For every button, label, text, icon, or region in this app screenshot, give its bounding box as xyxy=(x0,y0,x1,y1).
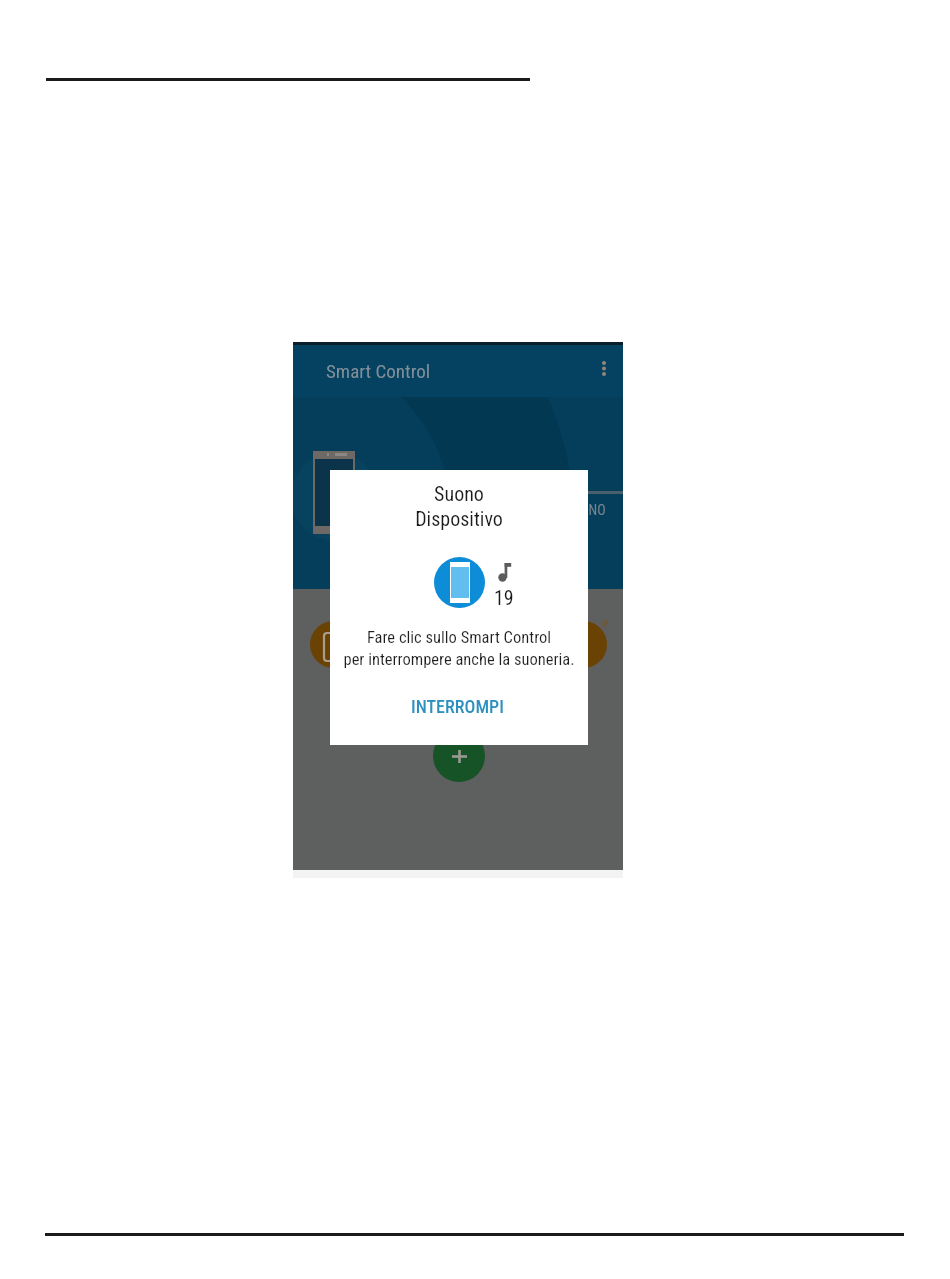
staticText: Fare clic sullo Smart Control per interr… xyxy=(330,628,588,669)
staticText: SUONO xyxy=(565,502,606,518)
button[interactable]: Device xyxy=(310,621,357,668)
button[interactable]: INTERROMPI xyxy=(405,692,510,721)
button[interactable]: Sound xyxy=(560,621,607,668)
button[interactable]: More options xyxy=(593,357,615,379)
staticText: Suono Dispositivo xyxy=(330,482,588,531)
staticText: INTERROMPI xyxy=(411,696,504,717)
staticText: 19 xyxy=(494,586,514,609)
staticText: Smart Control xyxy=(326,360,431,382)
button[interactable]: Add xyxy=(433,730,485,782)
